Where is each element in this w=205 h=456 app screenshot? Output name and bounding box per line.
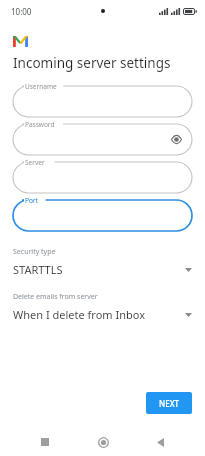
button[interactable]: Show password bbox=[169, 132, 184, 147]
button[interactable]: Password bbox=[13, 124, 192, 155]
staticText: Password bbox=[25, 120, 55, 129]
button[interactable]: Server bbox=[13, 162, 192, 193]
staticText: Security type bbox=[13, 247, 56, 257]
button[interactable]: Back bbox=[147, 429, 173, 455]
button[interactable]: Home bbox=[90, 429, 116, 455]
staticText: Server bbox=[25, 158, 45, 167]
staticText: STARTTLS bbox=[13, 262, 63, 277]
staticText: Incoming server settings bbox=[13, 54, 171, 72]
button[interactable]: Port bbox=[13, 200, 192, 231]
button[interactable]: Delete emails from server bbox=[0, 290, 205, 324]
staticText: NEXT bbox=[159, 398, 180, 409]
staticText: Delete emails from server bbox=[13, 292, 98, 302]
button[interactable]: Security type bbox=[0, 245, 205, 279]
staticText: 10:00 bbox=[11, 6, 32, 17]
button[interactable]: Username bbox=[13, 86, 192, 117]
staticText: Username bbox=[25, 82, 57, 91]
staticText: When I delete from Inbox bbox=[13, 307, 145, 322]
staticText: Port bbox=[25, 196, 38, 205]
button[interactable]: Recents bbox=[32, 429, 58, 455]
button[interactable]: NEXT bbox=[146, 392, 192, 414]
